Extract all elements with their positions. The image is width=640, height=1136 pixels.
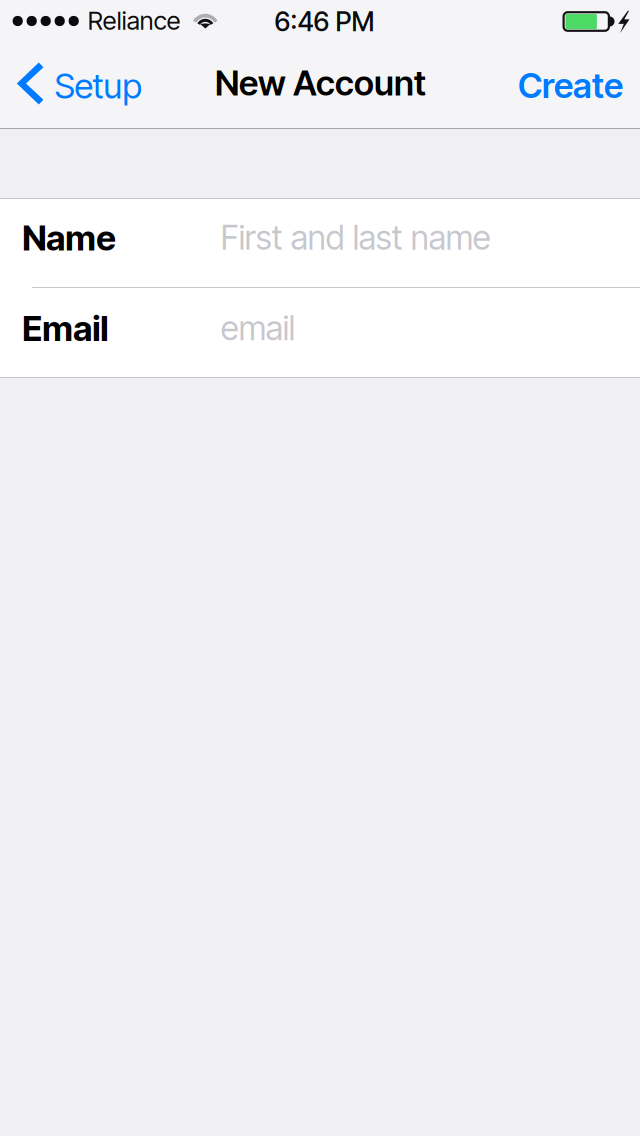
staticText: First and last name [221, 217, 491, 258]
staticText: New Account [215, 62, 426, 104]
button[interactable]: Setup [0, 40, 155, 129]
staticText: Name [22, 217, 116, 259]
button[interactable]: Email [0, 287, 640, 376]
staticText: Reliance [88, 5, 181, 36]
staticText: Create [518, 64, 623, 106]
staticText: Setup [54, 65, 141, 107]
button[interactable]: Create [500, 40, 640, 129]
staticText: email [221, 308, 295, 348]
staticText: 6:46 PM [274, 5, 374, 38]
button[interactable]: Name [0, 198, 640, 287]
staticText: Email [22, 307, 108, 349]
